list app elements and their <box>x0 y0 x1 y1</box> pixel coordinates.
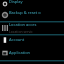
other: Display <box>2 1 8 7</box>
staticText: Account <box>9 37 25 42</box>
staticText: Application <box>9 50 31 55</box>
staticText: Display <box>9 0 23 4</box>
other: Application <box>2 50 8 56</box>
button[interactable]: Display <box>0 0 64 10</box>
button[interactable]: Application <box>0 50 64 61</box>
other: Backup and reset <box>2 12 8 18</box>
other: Accounts <box>2 37 8 43</box>
staticText: Location servic <box>9 29 33 33</box>
button[interactable]: Backup and reset <box>0 10 64 21</box>
button[interactable]: Accounts <box>0 37 64 48</box>
button[interactable]: Location acces <box>0 22 64 33</box>
staticText: Location acces <box>9 22 37 27</box>
other: Location acces <box>2 25 8 31</box>
staticText: Backup & reset o <box>9 10 41 15</box>
